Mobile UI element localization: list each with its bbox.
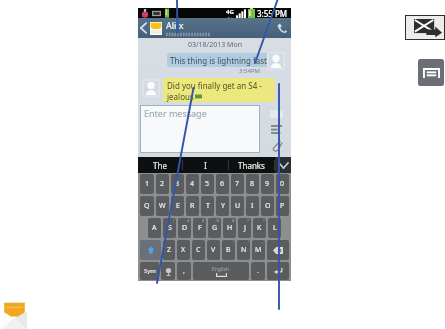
- button[interactable]: H: [223, 218, 236, 238]
- button[interactable]: More suggestions: [275, 157, 291, 173]
- staticText: ": [232, 240, 234, 245]
- button[interactable]: Q: [140, 196, 154, 216]
- button[interactable]: 9: [261, 174, 274, 194]
- button[interactable]: S: [163, 218, 176, 238]
- staticText: X: [181, 245, 186, 255]
- button[interactable]: English: [193, 262, 249, 280]
- staticText: Z: [167, 245, 172, 255]
- button[interactable]: V: [207, 240, 220, 260]
- staticText: &: [232, 218, 235, 223]
- staticText: T: [206, 201, 210, 211]
- button[interactable]: G: [208, 218, 221, 238]
- staticText: 5: [205, 179, 210, 189]
- button[interactable]: A: [148, 218, 161, 238]
- staticText: Enter message: [144, 107, 207, 119]
- staticText: F: [198, 223, 202, 233]
- staticText: H: [227, 223, 233, 233]
- staticText: M: [255, 245, 262, 255]
- button[interactable]: 8: [246, 174, 259, 194]
- staticText: ,: [183, 266, 185, 276]
- other: Back: [140, 22, 147, 34]
- button[interactable]: Enter message: [140, 105, 260, 153]
- button[interactable]: O: [261, 196, 274, 216]
- button[interactable]: Z: [163, 240, 175, 260]
- button[interactable]: B: [222, 240, 235, 260]
- staticText: ↑↓: [227, 16, 234, 18]
- staticText: L: [273, 223, 277, 233]
- button[interactable]: D: [178, 218, 191, 238]
- staticText: %: [216, 218, 220, 223]
- button[interactable]: ,: [177, 262, 191, 280]
- staticText: Y: [221, 201, 225, 211]
- button[interactable]: Back: [138, 18, 291, 38]
- button[interactable]: R: [186, 196, 199, 216]
- button[interactable]: Insert text: [263, 121, 290, 137]
- staticText: English: [212, 266, 230, 273]
- button[interactable]: E: [171, 196, 184, 216]
- button[interactable]: I: [246, 196, 259, 216]
- button[interactable]: C: [192, 240, 205, 260]
- button[interactable]: I: [183, 157, 228, 173]
- button[interactable]: Did you finally get an S4 -: [163, 78, 275, 102]
- button[interactable]: The: [138, 157, 182, 173]
- button[interactable]: L: [268, 218, 281, 238]
- staticText: B: [226, 245, 231, 255]
- button[interactable]: Send: [263, 105, 290, 121]
- button[interactable]: Keyboard: [418, 59, 444, 86]
- staticText: 4G: [226, 8, 234, 16]
- staticText: 3: [175, 179, 180, 189]
- staticText: W: [159, 201, 166, 211]
- button[interactable]: [140, 240, 161, 260]
- button[interactable]: P: [276, 196, 289, 216]
- button[interactable]: Voice input: [161, 262, 175, 280]
- staticText: ?: [263, 218, 265, 223]
- staticText: 6: [220, 179, 225, 189]
- staticText: I: [204, 160, 207, 171]
- button[interactable]: N: [237, 240, 250, 260]
- button[interactable]: Sym: [140, 262, 159, 280]
- button[interactable]: 1: [140, 174, 154, 194]
- button[interactable]: M: [252, 240, 265, 260]
- button[interactable]: 6: [216, 174, 229, 194]
- button[interactable]: Thanks: [229, 157, 274, 173]
- button[interactable]: U: [231, 196, 244, 216]
- staticText: 4: [190, 179, 195, 189]
- button[interactable]: Attach: [263, 137, 290, 153]
- staticText: 3:54PM: [239, 67, 260, 75]
- staticText: Thanks: [238, 160, 265, 171]
- staticText: S: [168, 223, 172, 233]
- staticText: jealous: [167, 91, 194, 102]
- button[interactable]: F: [193, 218, 206, 238]
- button[interactable]: Y: [216, 196, 229, 216]
- staticText: I: [251, 201, 254, 211]
- button[interactable]: [267, 240, 289, 260]
- button[interactable]: This thing is lightning fast: [167, 53, 270, 67]
- staticText: K: [257, 223, 262, 233]
- button[interactable]: J: [238, 218, 251, 238]
- button[interactable]: .: [251, 262, 265, 280]
- staticText: *: [247, 218, 250, 223]
- staticText: 7: [235, 179, 240, 189]
- staticText: $: [202, 218, 205, 223]
- staticText: 1: [145, 179, 150, 189]
- staticText: ': [248, 240, 249, 245]
- button[interactable]: K: [253, 218, 266, 238]
- staticText: Did you finally get an S4 -: [167, 80, 262, 91]
- button[interactable]: 7: [231, 174, 244, 194]
- button[interactable]: W: [156, 196, 169, 216]
- staticText: E: [176, 201, 180, 211]
- button[interactable]: 5: [201, 174, 214, 194]
- button[interactable]: Send message: [406, 16, 444, 39]
- button[interactable]: T: [201, 196, 214, 216]
- staticText: D: [182, 223, 188, 233]
- button[interactable]: Enter: [267, 262, 289, 280]
- staticText: 03/18/2013 Mon: [188, 40, 242, 50]
- button[interactable]: 2: [156, 174, 169, 194]
- button[interactable]: 0: [276, 174, 289, 194]
- button[interactable]: 4: [186, 174, 199, 194]
- staticText: This thing is lightning fast: [170, 55, 267, 66]
- button[interactable]: 3: [171, 174, 184, 194]
- staticText: U: [235, 201, 241, 211]
- button[interactable]: X: [177, 240, 190, 260]
